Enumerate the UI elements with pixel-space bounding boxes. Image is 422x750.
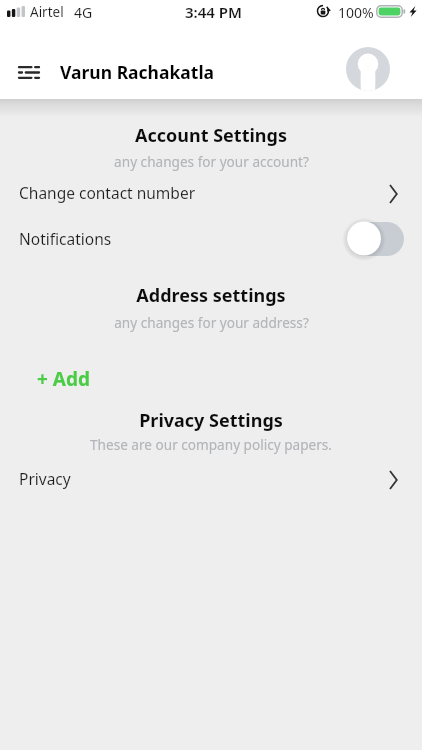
staticText: These are our company policy papers. bbox=[90, 435, 332, 454]
button[interactable]: Notifications bbox=[0, 221, 422, 256]
button[interactable]: Profile bbox=[346, 47, 390, 91]
staticText: any changes for your address? bbox=[114, 313, 309, 332]
staticText: any changes for your account? bbox=[114, 152, 309, 171]
staticText: Change contact number bbox=[19, 182, 196, 203]
staticText: Account Settings bbox=[135, 123, 287, 148]
staticText: Privacy Settings bbox=[139, 408, 283, 433]
staticText: 3:44 PM bbox=[185, 2, 242, 22]
staticText: Address settings bbox=[136, 283, 286, 308]
staticText: Airtel bbox=[30, 3, 64, 21]
staticText: Privacy bbox=[19, 468, 71, 489]
button[interactable]: Notifications toggle bbox=[347, 221, 404, 256]
button[interactable]: Menu bbox=[7, 50, 51, 94]
staticText: + Add bbox=[37, 366, 90, 392]
staticText: Varun Rachakatla bbox=[60, 60, 215, 84]
button[interactable]: Change contact number bbox=[0, 176, 422, 208]
button[interactable]: Privacy bbox=[0, 462, 422, 494]
staticText: Notifications bbox=[19, 228, 112, 249]
staticText: 100% bbox=[338, 3, 374, 22]
button[interactable]: + Add bbox=[31, 362, 96, 396]
staticText: 4G bbox=[74, 3, 93, 22]
